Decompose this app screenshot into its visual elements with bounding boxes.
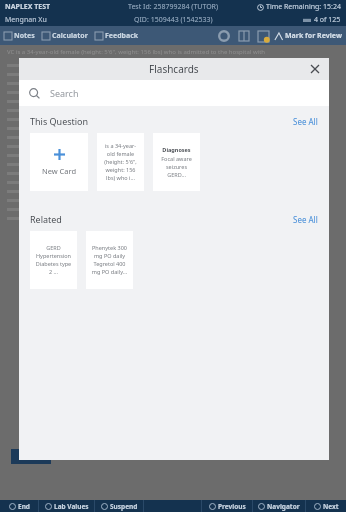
staticText: Lab Values: [54, 502, 89, 511]
staticText: Related: [30, 213, 62, 225]
staticText: Focal aware seizures GERD...: [157, 155, 196, 179]
staticText: VC is a 34-year-old female (height: 5'6"…: [7, 48, 266, 56]
staticText: This Question: [30, 115, 89, 127]
button[interactable]: See All: [293, 214, 318, 225]
button[interactable]: Search: [19, 80, 329, 106]
button[interactable]: Lab Values: [39, 500, 94, 512]
staticText: Flashcards: [149, 62, 199, 76]
staticText: QID: 1509443 (1542533): [134, 15, 213, 25]
button[interactable]: Settings: [218, 30, 230, 42]
button[interactable]: Mark for Review: [274, 31, 342, 41]
staticText: Calculator: [52, 31, 88, 41]
staticText: Diagnoses: [162, 146, 191, 153]
button[interactable]: See All: [293, 116, 318, 127]
staticText: Phenytek 300 mg PO daily Tegretol 400 mg…: [90, 244, 129, 276]
staticText: Mark for Review: [285, 31, 342, 41]
staticText: Search: [50, 87, 79, 99]
button[interactable]: Flashcards: [258, 31, 269, 42]
button[interactable]: Suspend: [95, 500, 143, 512]
button[interactable]: Feedback: [95, 31, 139, 41]
staticText: Feedback: [105, 31, 139, 41]
button[interactable]: is a 34-year-old female (height: 5'6", w…: [97, 133, 144, 191]
button[interactable]: [11, 449, 51, 464]
button[interactable]: Diagnoses: [153, 133, 200, 191]
staticText: Time Remaining: 15:24: [266, 2, 341, 12]
button[interactable]: End: [0, 500, 38, 512]
button[interactable]: New Card: [30, 133, 88, 191]
staticText: 4 of 125: [314, 15, 341, 25]
staticText: New Card: [42, 166, 77, 176]
button[interactable]: Close: [308, 62, 322, 76]
button[interactable]: Notebook: [239, 31, 249, 41]
button[interactable]: GERD Hypertension Diabetes type 2 ...: [30, 231, 77, 289]
button[interactable]: Next: [306, 500, 346, 512]
staticText: GERD Hypertension Diabetes type 2 ...: [34, 244, 73, 276]
staticText: See All: [293, 214, 318, 225]
button[interactable]: Navigator: [253, 500, 305, 512]
staticText: Next: [323, 502, 339, 511]
button[interactable]: Notes: [4, 31, 35, 41]
staticText: See All: [293, 116, 318, 127]
button[interactable]: Calculator: [42, 31, 88, 41]
staticText: NAPLEX TEST: [5, 2, 51, 12]
staticText: Navigator: [267, 502, 300, 511]
staticText: Notes: [14, 31, 35, 41]
button[interactable]: Phenytek 300 mg PO daily Tegretol 400 mg…: [86, 231, 133, 289]
button[interactable]: Previous: [202, 500, 252, 512]
staticText: Previous: [218, 502, 246, 511]
staticText: End: [18, 502, 30, 511]
staticText: is a 34-year-old female (height: 5'6", w…: [101, 142, 140, 182]
staticText: Mengnan Xu: [5, 15, 47, 25]
staticText: Suspend: [110, 502, 138, 511]
staticText: Test Id: 258799284 (TUTOR): [128, 2, 219, 12]
